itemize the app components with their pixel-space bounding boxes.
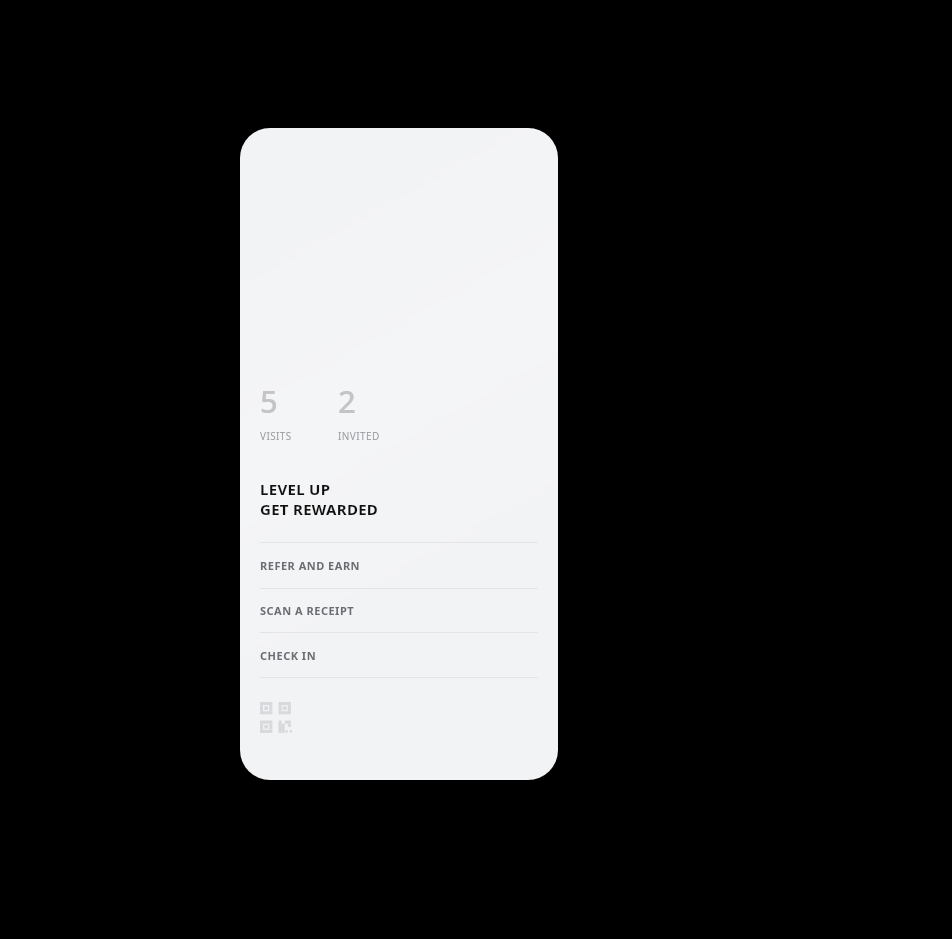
button[interactable]: SCAN A RECEIPT <box>260 589 538 632</box>
staticText: LEVEL UP <box>260 479 331 499</box>
staticText: GET REWARDED <box>260 499 379 519</box>
staticText: SCAN A RECEIPT <box>260 603 355 618</box>
button[interactable]: Show my QR code <box>260 702 296 738</box>
staticText: 2 <box>338 380 356 422</box>
button[interactable]: CHECK IN <box>260 633 538 677</box>
staticText: REFER AND EARN <box>260 558 361 573</box>
staticText: CHECK IN <box>260 648 317 663</box>
button[interactable]: REFER AND EARN <box>260 543 538 588</box>
staticText: VISITS <box>260 429 292 443</box>
staticText: 5 <box>260 380 278 422</box>
staticText: INVITED <box>338 429 380 443</box>
